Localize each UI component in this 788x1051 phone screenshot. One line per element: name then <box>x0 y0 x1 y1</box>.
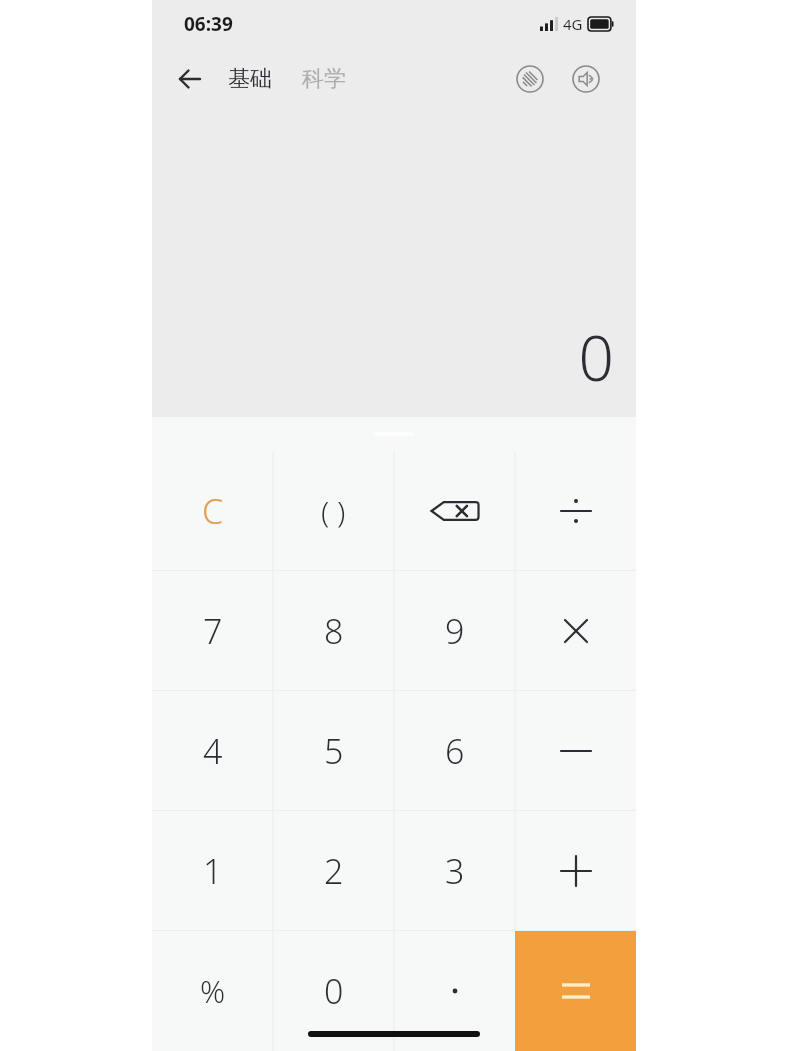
button[interactable]: Mute <box>566 59 606 99</box>
staticText: 0 <box>324 968 344 1014</box>
staticText: 9 <box>445 608 465 654</box>
button[interactable]: 5 <box>273 691 394 811</box>
other: Divide <box>559 494 593 528</box>
other: Backspace <box>427 495 483 527</box>
staticText: % <box>200 970 226 1012</box>
other: Equals <box>558 973 594 1009</box>
other: Multiply <box>559 614 593 648</box>
other: Decimal point <box>445 981 465 1001</box>
button[interactable]: 9 <box>394 571 515 691</box>
button[interactable]: Plus <box>515 811 636 931</box>
button[interactable]: Decimal point <box>394 931 515 1051</box>
button[interactable]: 2 <box>273 811 394 931</box>
staticText: 2 <box>324 848 344 894</box>
staticText: ( ) <box>321 491 346 532</box>
staticText: 1 <box>203 848 223 894</box>
button[interactable]: History <box>510 59 550 99</box>
staticText: 4G <box>563 14 583 34</box>
staticText: 3 <box>445 848 465 894</box>
staticText: 06:39 <box>184 11 233 37</box>
button[interactable]: 0 <box>273 931 394 1051</box>
button[interactable]: % <box>152 931 273 1051</box>
staticText: 5 <box>324 728 344 774</box>
button[interactable]: 基础 <box>224 59 276 99</box>
staticText: 科学 <box>302 65 346 93</box>
staticText: 基础 <box>228 65 272 93</box>
other: Plus <box>559 854 593 888</box>
staticText: 4 <box>203 728 223 774</box>
staticText: C <box>202 488 224 534</box>
button[interactable]: 1 <box>152 811 273 931</box>
button[interactable]: 科学 <box>298 59 350 99</box>
button[interactable]: 8 <box>273 571 394 691</box>
button[interactable]: Multiply <box>515 571 636 691</box>
staticText: 0 <box>578 315 614 399</box>
button[interactable]: Divide <box>515 451 636 571</box>
staticText: 7 <box>203 608 223 654</box>
button[interactable]: 6 <box>394 691 515 811</box>
button[interactable]: Clear <box>152 451 273 571</box>
button[interactable]: 3 <box>394 811 515 931</box>
button[interactable]: Minus <box>515 691 636 811</box>
button[interactable]: 4 <box>152 691 273 811</box>
button[interactable]: ( ) <box>273 451 394 571</box>
staticText: 6 <box>445 728 465 774</box>
button[interactable]: Equals <box>515 931 636 1051</box>
button[interactable]: Back <box>168 57 212 101</box>
button[interactable]: 7 <box>152 571 273 691</box>
button[interactable]: Backspace <box>394 451 515 571</box>
other: Minus <box>559 734 593 768</box>
staticText: 8 <box>324 608 344 654</box>
